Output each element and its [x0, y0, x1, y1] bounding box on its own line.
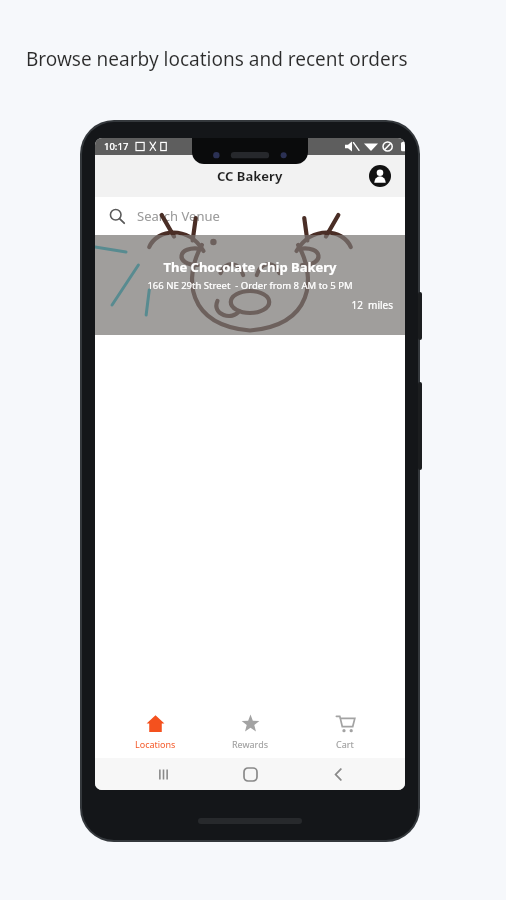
staticText: The Chocolate Chip Bakery [107, 258, 393, 276]
button[interactable]: Back [318, 758, 358, 790]
button[interactable]: Locations [120, 710, 190, 754]
staticText: Browse nearby locations and recent order… [26, 46, 408, 72]
staticText: Search Venue [137, 207, 220, 225]
button[interactable]: Rewards [215, 710, 285, 754]
staticText: 10:17 [104, 140, 129, 153]
button[interactable]: The Chocolate Chip Bakery [95, 235, 405, 335]
staticText: Locations [135, 738, 176, 750]
button[interactable]: Account [365, 161, 395, 191]
button[interactable]: Recents [143, 758, 183, 790]
staticText: Rewards [232, 738, 269, 750]
button[interactable]: Search Venue [95, 197, 405, 235]
staticText: 12 miles [107, 298, 393, 312]
button[interactable]: Home [230, 758, 270, 790]
staticText: 166 NE 29th Street - Order from 8 AM to … [107, 279, 393, 292]
staticText: Cart [336, 738, 354, 750]
staticText: CC Bakery [217, 167, 283, 185]
button[interactable]: Cart [310, 710, 380, 754]
